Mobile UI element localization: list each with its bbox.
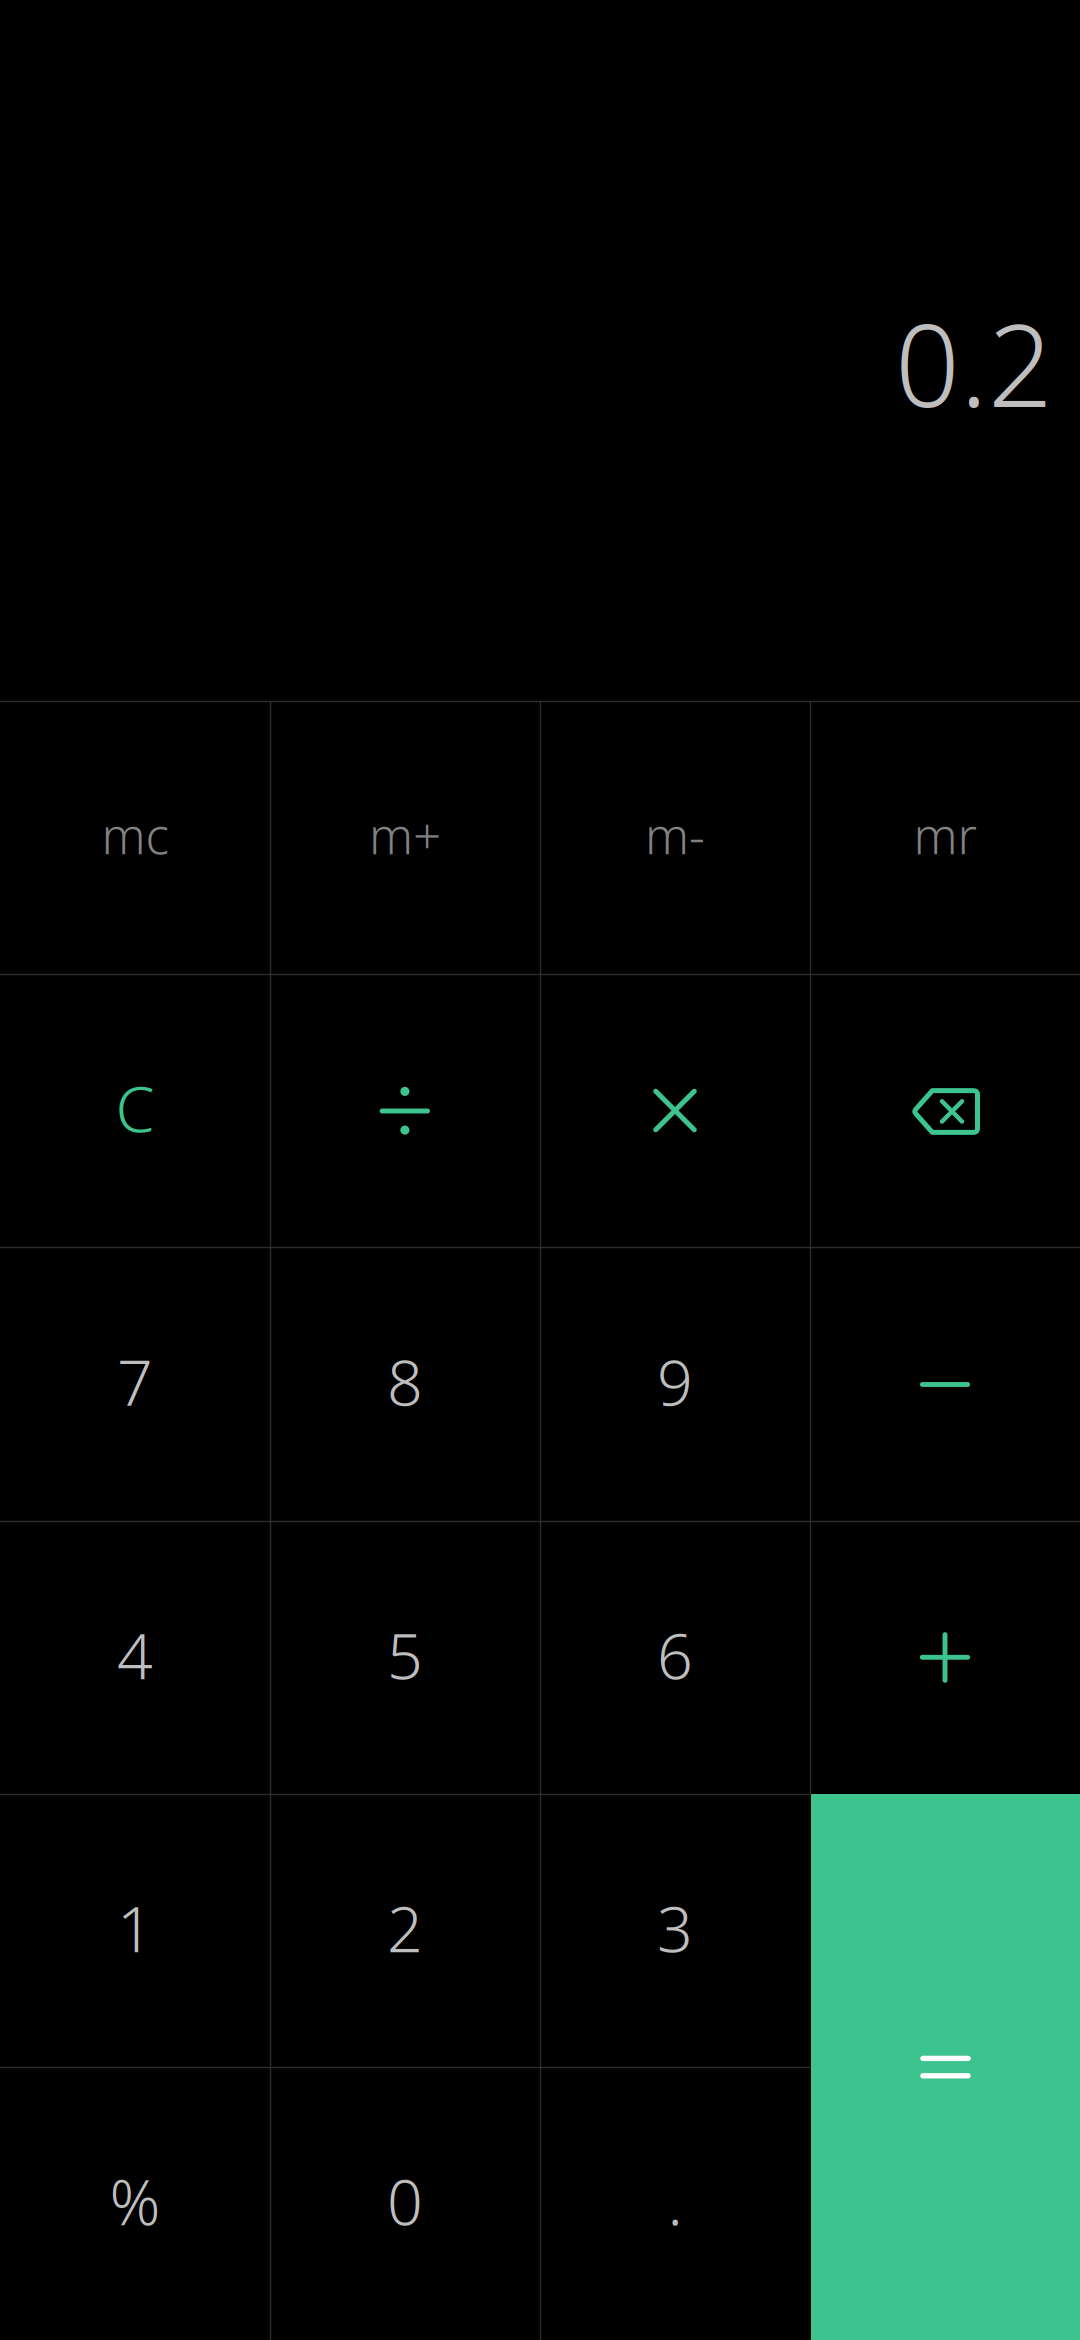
staticText: 0.2 bbox=[895, 288, 1053, 438]
button[interactable]: Memory recall bbox=[810, 701, 1080, 974]
staticText: 5 bbox=[387, 1613, 423, 1697]
button[interactable]: 7 bbox=[0, 1247, 270, 1521]
button[interactable]: 6 bbox=[540, 1521, 810, 1794]
staticText: % bbox=[109, 2159, 160, 2243]
button[interactable]: Divide bbox=[270, 974, 540, 1247]
button[interactable]: Memory subtract bbox=[540, 701, 810, 974]
button[interactable]: Clear bbox=[0, 974, 270, 1247]
staticText: 3 bbox=[657, 1886, 693, 1970]
button[interactable]: 5 bbox=[270, 1521, 540, 1794]
staticText: 1 bbox=[117, 1886, 153, 1970]
staticText: mr bbox=[913, 802, 976, 868]
staticText: . bbox=[667, 2159, 682, 2243]
staticText: 6 bbox=[657, 1613, 693, 1697]
staticText: 0 bbox=[387, 2159, 423, 2243]
button[interactable]: 4 bbox=[0, 1521, 270, 1794]
button[interactable]: Equals bbox=[811, 1794, 1080, 2340]
button[interactable]: Memory clear bbox=[0, 701, 270, 974]
button[interactable]: Decimal point bbox=[540, 2067, 810, 2340]
staticText: 9 bbox=[657, 1340, 693, 1423]
staticText: m+ bbox=[369, 802, 441, 868]
button[interactable]: Delete bbox=[810, 974, 1080, 1247]
staticText: 4 bbox=[117, 1613, 153, 1697]
staticText: 8 bbox=[387, 1340, 423, 1423]
button[interactable]: Add bbox=[810, 1521, 1080, 1794]
button[interactable]: 3 bbox=[540, 1794, 810, 2067]
staticText: 2 bbox=[387, 1886, 423, 1970]
button[interactable]: 2 bbox=[270, 1794, 540, 2067]
button[interactable]: Multiply bbox=[540, 974, 810, 1247]
staticText: C bbox=[115, 1066, 154, 1150]
button[interactable]: 1 bbox=[0, 1794, 270, 2067]
button[interactable]: 8 bbox=[270, 1247, 540, 1521]
staticText: mc bbox=[101, 802, 168, 868]
button[interactable]: 9 bbox=[540, 1247, 810, 1521]
staticText: 7 bbox=[117, 1340, 153, 1423]
button[interactable]: 0 bbox=[270, 2067, 540, 2340]
button[interactable]: Memory add bbox=[270, 701, 540, 974]
staticText: m- bbox=[645, 802, 705, 868]
button[interactable]: Subtract bbox=[810, 1247, 1080, 1521]
button[interactable]: Percent bbox=[0, 2067, 270, 2340]
